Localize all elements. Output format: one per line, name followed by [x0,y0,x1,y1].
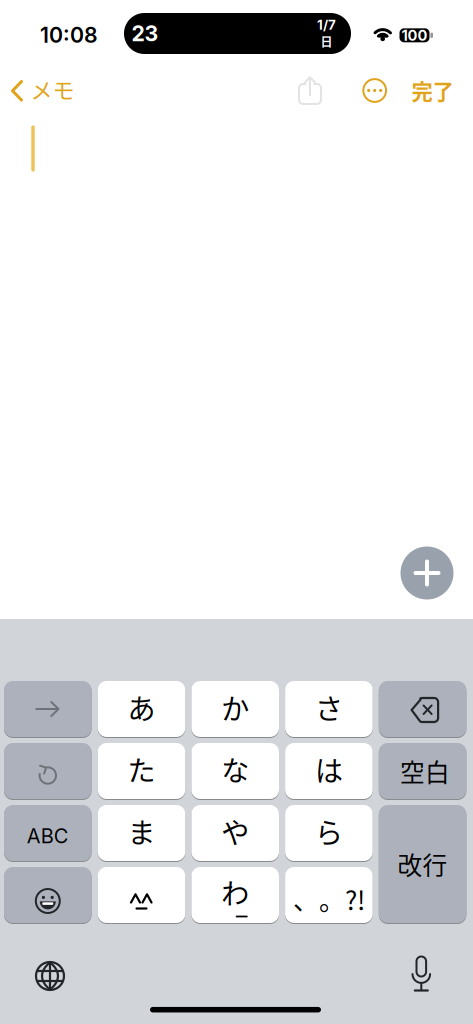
button[interactable]: その他 [362,78,387,103]
button[interactable]: 添付を追加 [400,546,453,599]
staticText: 、。?! [293,880,365,918]
staticText: な [221,749,249,789]
staticText: あ [127,687,155,727]
button[interactable]: た [98,743,185,799]
button[interactable]: ま [98,805,185,861]
button[interactable]: や [191,805,279,861]
staticText: か [221,687,249,727]
staticText: 1/7 [317,17,336,33]
button[interactable]: 空白 [379,743,466,799]
staticText: は [315,749,343,789]
button[interactable]: 削除 [379,681,466,737]
staticText: や [221,811,249,851]
button[interactable]: 英字に切り替え [4,805,92,861]
button[interactable]: カーソルを移動 [4,681,92,737]
staticText: わ [221,872,249,912]
staticText: 空白 [400,753,450,789]
staticText: た [127,749,155,789]
staticText: 10:08 [40,22,98,48]
button[interactable]: あ [98,681,185,737]
button[interactable]: ら [285,805,373,861]
button[interactable]: メモ [0,79,78,103]
button[interactable]: 音声入力 [409,955,433,993]
staticText: メモ [30,73,74,105]
button[interactable]: やり直す [4,743,92,799]
button[interactable]: 完了 [411,75,453,106]
button[interactable]: は [285,743,373,799]
button[interactable]: 改行 [379,805,466,923]
button[interactable]: さ [285,681,373,737]
button[interactable]: 次のキーボード [36,962,64,990]
button[interactable]: 、。?! [285,867,373,923]
staticText: 改行 [398,846,448,882]
button[interactable]: ^_^ [98,867,185,923]
staticText: ま [127,811,155,851]
staticText: 23 [131,21,158,46]
staticText: 100 [401,26,427,44]
button[interactable]: 絵文字 [4,867,92,923]
staticText: 完了 [411,75,453,106]
staticText: 日 [320,33,332,50]
staticText: さ [315,687,343,727]
button[interactable]: 共有 [298,72,322,106]
button[interactable]: わ [191,867,279,923]
button[interactable]: な [191,743,279,799]
staticText: ABC [27,824,69,848]
button[interactable]: か [191,681,279,737]
staticText: ら [315,811,343,851]
